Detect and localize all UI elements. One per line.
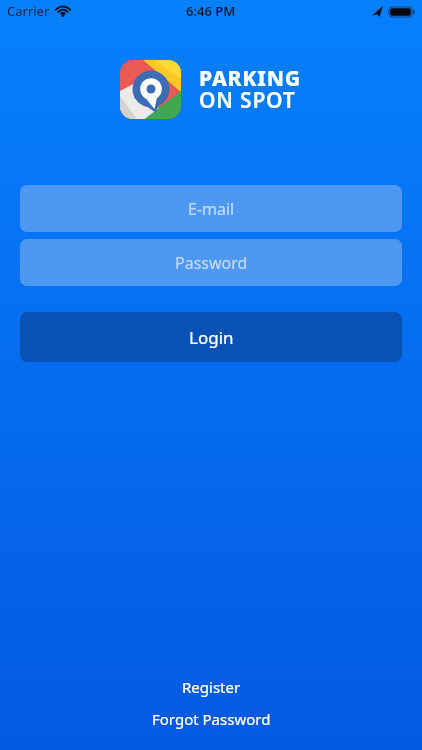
staticText: Register	[182, 677, 241, 697]
staticText: PARKING	[199, 64, 302, 93]
button[interactable]: Register	[182, 677, 241, 697]
staticText: E-mail	[188, 198, 235, 220]
staticText: 6:46 PM	[186, 2, 236, 20]
staticText: Password	[175, 252, 248, 274]
button[interactable]: E-mail	[20, 185, 402, 232]
staticText: Carrier	[7, 2, 50, 20]
button[interactable]: Password	[20, 239, 402, 286]
staticText: ON SPOT	[199, 86, 296, 115]
button[interactable]: Forgot Password	[152, 709, 271, 729]
button[interactable]: Login	[20, 312, 402, 362]
staticText: Forgot Password	[152, 709, 271, 729]
staticText: Login	[189, 326, 234, 349]
